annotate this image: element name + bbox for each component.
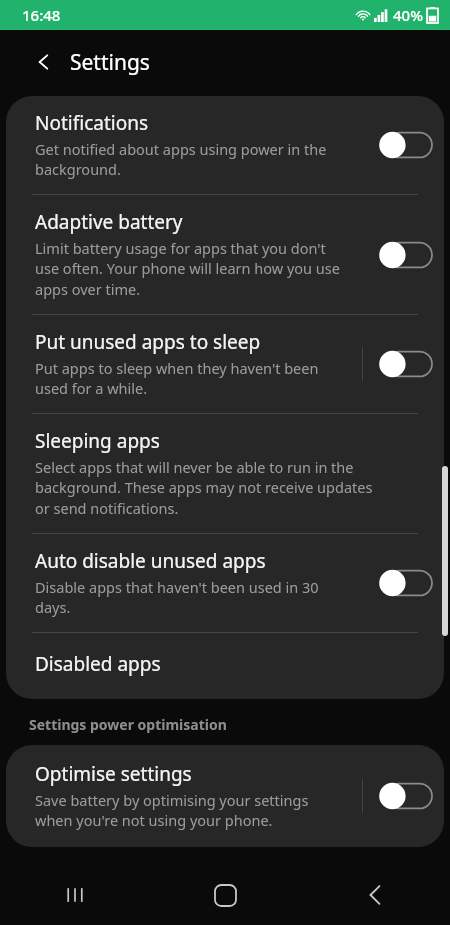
button[interactable]: Toggle bbox=[378, 781, 432, 811]
button[interactable]: Disabled apps bbox=[6, 633, 444, 699]
staticText: Save battery by optimising your settings… bbox=[35, 790, 309, 831]
staticText: Adaptive battery bbox=[35, 209, 183, 235]
button[interactable]: Toggle bbox=[378, 130, 432, 160]
staticText: Settings bbox=[70, 48, 150, 77]
button[interactable]: Home bbox=[150, 865, 300, 925]
staticText: Optimise settings bbox=[35, 761, 192, 787]
staticText: Put unused apps to sleep bbox=[35, 329, 261, 355]
button[interactable]: Adaptive battery bbox=[6, 195, 444, 314]
button[interactable]: Back bbox=[26, 44, 62, 80]
staticText: Settings power optimisation bbox=[29, 715, 227, 734]
button[interactable]: Notifications bbox=[6, 96, 444, 194]
button[interactable]: Sleeping apps bbox=[6, 414, 444, 533]
button[interactable]: Auto disable unused apps bbox=[6, 534, 444, 632]
button[interactable]: Back bbox=[300, 865, 450, 925]
staticText: Sleeping apps bbox=[35, 428, 160, 454]
button[interactable]: Recents bbox=[0, 865, 150, 925]
button[interactable]: Toggle bbox=[378, 349, 432, 379]
button[interactable]: Toggle bbox=[378, 240, 432, 270]
button[interactable]: Optimise settings bbox=[6, 745, 444, 847]
staticText: 16:48 bbox=[22, 5, 61, 25]
staticText: Put apps to sleep when they haven't been… bbox=[35, 358, 319, 399]
staticText: Disabled apps bbox=[35, 651, 161, 677]
staticText: Notifications bbox=[35, 110, 149, 136]
staticText: Limit battery usage for apps that you do… bbox=[35, 238, 340, 300]
staticText: 40% bbox=[393, 5, 423, 25]
staticText: Disable apps that haven't been used in 3… bbox=[35, 577, 319, 618]
staticText: Auto disable unused apps bbox=[35, 548, 266, 574]
staticText: Select apps that will never be able to r… bbox=[35, 457, 373, 519]
staticText: Get notified about apps using power in t… bbox=[35, 139, 327, 180]
button[interactable]: Toggle bbox=[378, 568, 432, 598]
button[interactable]: Put unused apps to sleep bbox=[6, 315, 444, 413]
